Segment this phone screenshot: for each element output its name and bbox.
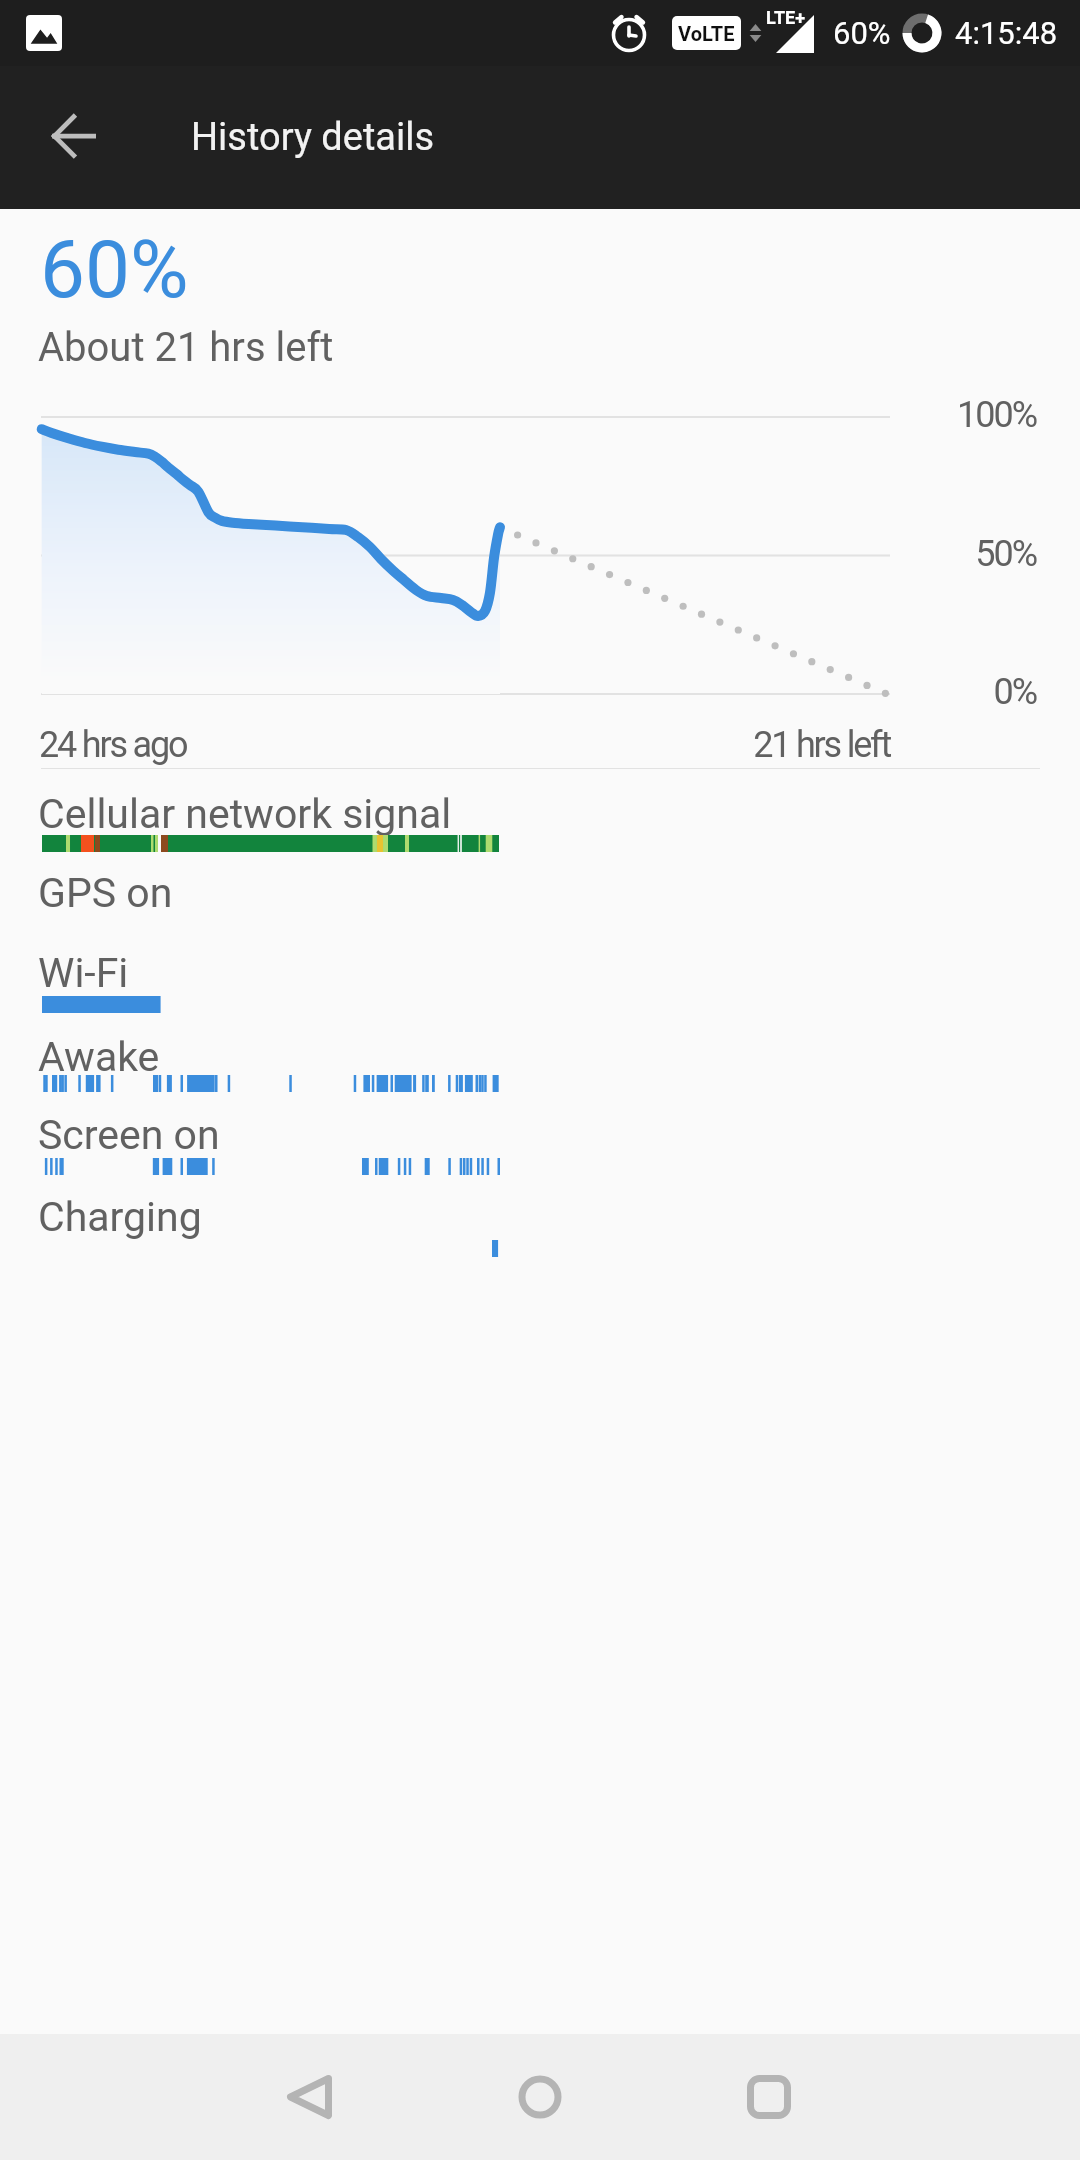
staticText: LTE+ (766, 7, 806, 28)
button[interactable]: Back (249, 2037, 369, 2157)
staticText: 0% (900, 671, 1036, 713)
staticText: Awake (38, 1033, 160, 1081)
staticText: 100% (900, 394, 1036, 436)
staticText: Cellular network signal (38, 790, 452, 838)
button[interactable]: Home (480, 2037, 600, 2157)
staticText: Wi-Fi (38, 949, 129, 997)
staticText: VoLTE (678, 22, 735, 45)
staticText: 60% (833, 15, 891, 51)
staticText: GPS on (38, 869, 173, 917)
staticText: 21 hrs left (500, 724, 890, 766)
staticText: Screen on (38, 1111, 220, 1159)
staticText: 50% (900, 533, 1036, 575)
staticText: 4:15:48 (955, 15, 1058, 51)
staticText: 24 hrs ago (39, 724, 187, 766)
staticText: About 21 hrs left (38, 324, 334, 371)
staticText: Charging (38, 1193, 202, 1241)
staticText: 60% (40, 223, 189, 317)
button[interactable]: Back (24, 90, 120, 186)
staticText: History details (191, 115, 435, 160)
button[interactable]: Recent apps (709, 2037, 829, 2157)
